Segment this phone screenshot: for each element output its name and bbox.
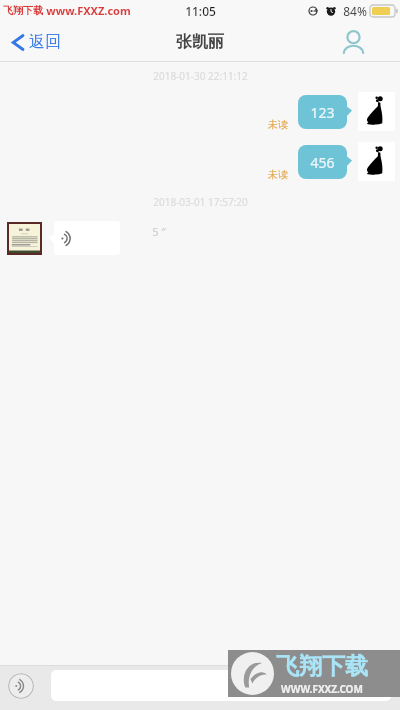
button[interactable]: 返回 — [0, 27, 73, 57]
staticText: 飞翔下载 — [276, 652, 368, 681]
staticText: 张凯丽 — [176, 32, 224, 52]
staticText: 5 ″ — [152, 224, 166, 239]
button[interactable]: Contact profile — [329, 25, 400, 59]
staticText: 84% — [343, 3, 367, 19]
button[interactable]: Contact avatar — [358, 92, 395, 131]
button[interactable]: Sender avatar — [7, 222, 42, 255]
staticText: 123 — [310, 103, 335, 122]
staticText: 2018-03-01 17:57:20 — [153, 195, 248, 209]
button[interactable] — [51, 670, 391, 701]
staticText: 456 — [310, 153, 335, 172]
button[interactable]: Voice input — [8, 673, 34, 699]
button[interactable]: Contact avatar — [358, 142, 395, 181]
staticText: 未读 — [268, 168, 288, 181]
staticText: 返回 — [29, 32, 61, 52]
staticText: 未读 — [268, 118, 288, 131]
staticText: 飞翔下载 — [3, 4, 43, 17]
button[interactable] — [49, 221, 120, 255]
button[interactable]: 456 — [298, 142, 352, 181]
staticText: 2018-01-30 22:11:12 — [153, 69, 248, 83]
staticText: www.FXXZ.com — [46, 3, 131, 18]
staticText: 11:05 — [185, 3, 216, 19]
button[interactable]: 123 — [298, 92, 352, 131]
staticText: WWW.FXXZ.COM — [281, 682, 363, 696]
